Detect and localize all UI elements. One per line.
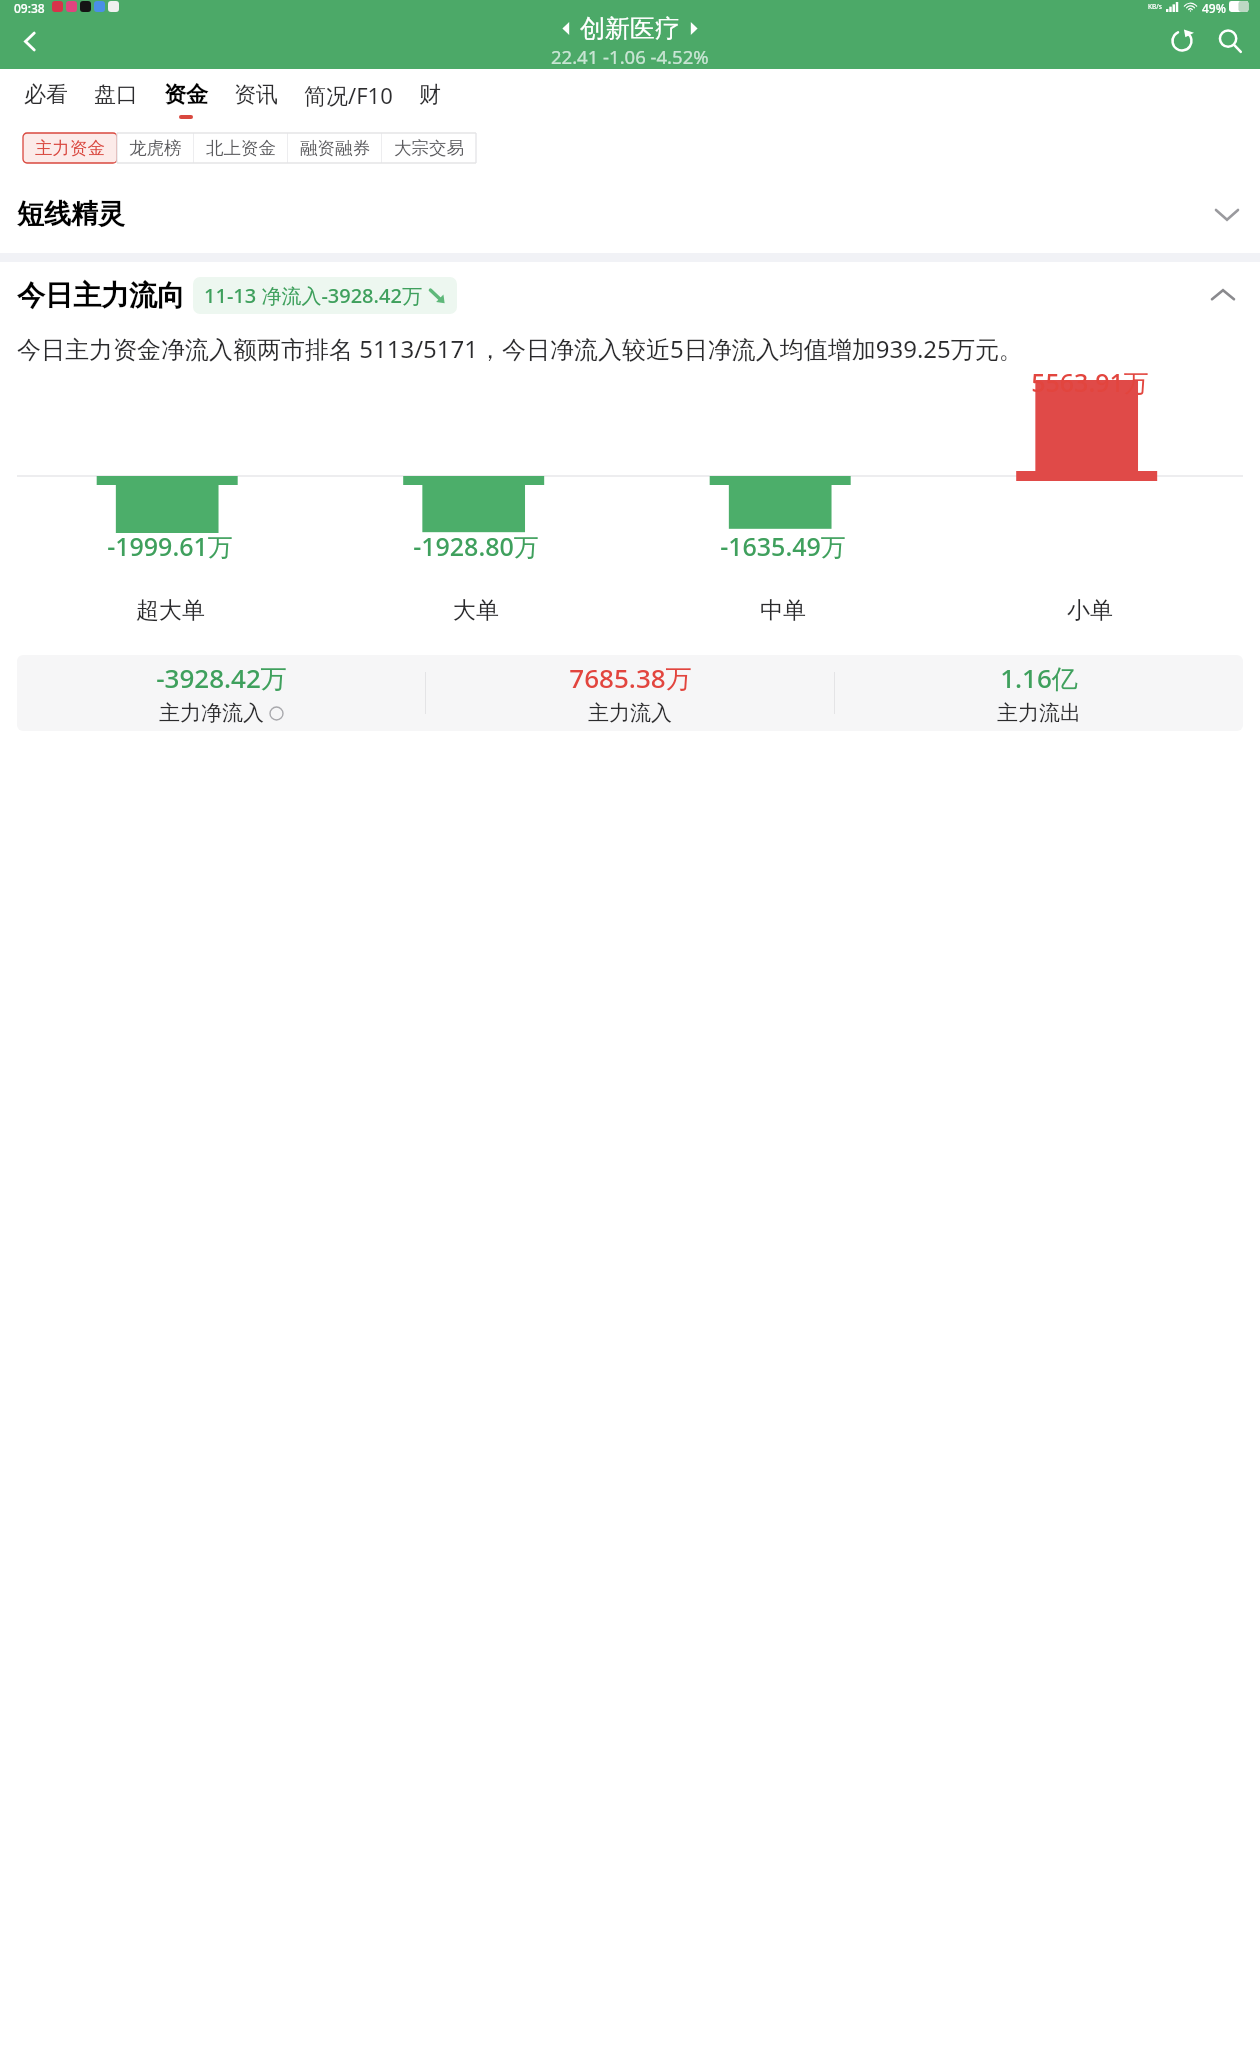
button[interactable]: 龙虎榜 xyxy=(117,133,194,163)
staticText: 大单 xyxy=(453,596,499,625)
staticText: 09:38 xyxy=(14,0,45,13)
staticText: -1928.80万 xyxy=(413,529,539,563)
button[interactable]: 财 xyxy=(406,81,454,119)
button[interactable]: Back xyxy=(6,17,54,65)
button[interactable]: 融资融券 xyxy=(288,133,382,163)
staticText: 盘口 xyxy=(94,81,138,109)
staticText: -1635.49万 xyxy=(720,529,846,563)
staticText: 11-13 净流入-3928.42万 xyxy=(204,282,422,309)
staticText: 大宗交易 xyxy=(394,137,464,159)
staticText: 融资融券 xyxy=(300,137,370,159)
button[interactable]: 必看 xyxy=(11,81,81,119)
staticText: 49% xyxy=(1202,0,1226,13)
staticText: 今日主力资金净流入额两市排名 5113/5171，今日净流入较近5日净流入均值增… xyxy=(17,332,1243,365)
staticText: 5563.91万 xyxy=(1031,365,1149,399)
staticText: 必看 xyxy=(24,81,68,109)
button[interactable]: 主力资金 xyxy=(23,133,117,163)
staticText: KB/s xyxy=(1148,2,1162,11)
staticText: 创新医疗 xyxy=(580,13,680,44)
staticText: 资讯 xyxy=(234,81,278,109)
button[interactable]: -3928.42万 xyxy=(17,655,425,731)
staticText: 主力流入 xyxy=(588,700,672,726)
staticText: 7685.38万 xyxy=(569,660,692,696)
staticText: 中单 xyxy=(760,596,806,625)
button[interactable]: 简况/F10 xyxy=(291,80,406,120)
button[interactable]: 短线精灵 xyxy=(0,175,1260,253)
button[interactable]: 资讯 xyxy=(221,81,291,119)
staticText: 短线精灵 xyxy=(17,197,125,231)
staticText: -3928.42万 xyxy=(156,660,287,696)
button[interactable]: 大宗交易 xyxy=(382,133,476,163)
staticText: 小单 xyxy=(1067,596,1113,625)
staticText: 简况/F10 xyxy=(304,80,393,110)
button[interactable]: Refresh xyxy=(1158,17,1206,65)
button[interactable]: Search xyxy=(1206,17,1254,65)
staticText: 主力净流入 xyxy=(159,700,264,726)
button[interactable]: 11-13 净流入-3928.42万 xyxy=(193,277,457,314)
staticText: 超大单 xyxy=(136,596,205,625)
staticText: 22.41 -1.06 -4.52% xyxy=(551,44,709,69)
staticText: 主力流出 xyxy=(997,700,1081,726)
button[interactable]: 资金 xyxy=(151,81,221,119)
button[interactable]: 北上资金 xyxy=(194,133,288,163)
button[interactable]: 盘口 xyxy=(81,81,151,119)
staticText: 财 xyxy=(419,81,441,109)
staticText: -1999.61万 xyxy=(107,529,233,563)
button[interactable]: 7685.38万 xyxy=(426,655,834,731)
button[interactable]: 1.16亿 xyxy=(835,655,1243,731)
button[interactable]: 创新医疗 xyxy=(551,13,709,69)
staticText: 龙虎榜 xyxy=(129,137,182,159)
staticText: 1.16亿 xyxy=(1000,660,1078,696)
staticText: 今日主力流向 xyxy=(17,278,185,313)
staticText: 主力资金 xyxy=(35,137,105,159)
staticText: 北上资金 xyxy=(206,137,276,159)
staticText: 资金 xyxy=(164,81,208,109)
button[interactable]: Collapse xyxy=(1208,280,1238,310)
